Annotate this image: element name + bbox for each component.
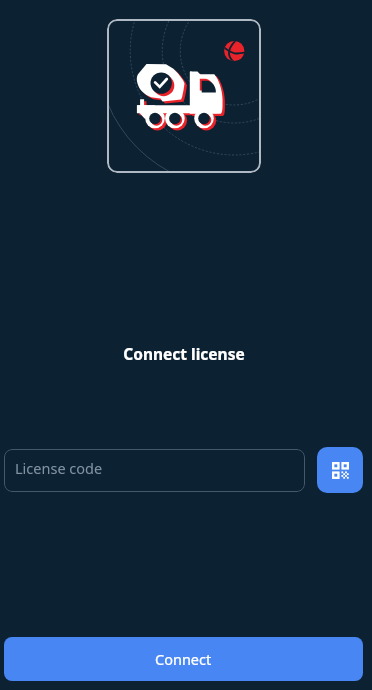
staticText: Connect <box>155 649 212 669</box>
button[interactable]: License code <box>4 449 305 492</box>
button[interactable]: Connect <box>4 637 363 681</box>
staticText: License code <box>15 458 103 478</box>
staticText: Connect license <box>123 343 245 364</box>
button[interactable]: Scan QR code <box>317 447 363 493</box>
